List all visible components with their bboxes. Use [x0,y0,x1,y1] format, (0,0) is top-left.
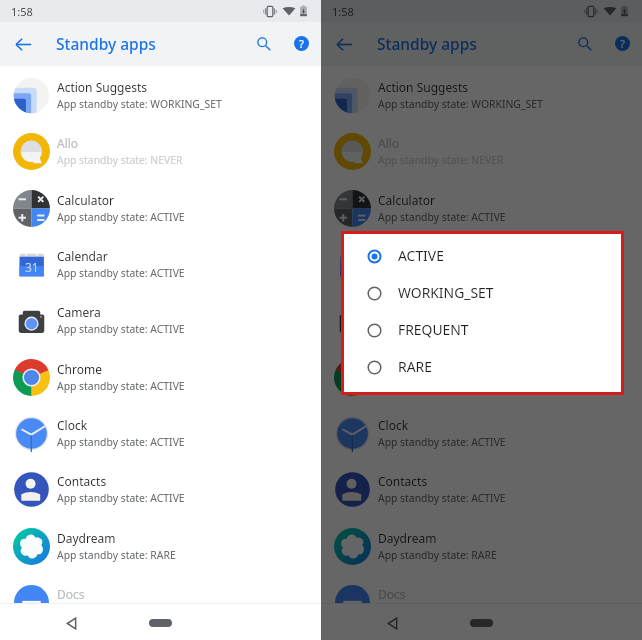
staticText: ? [620,36,625,51]
button[interactable]: Back [59,611,83,635]
button[interactable]: Back [332,32,356,56]
button[interactable]: Allo [0,123,321,179]
staticText: App standby state: RARE [378,548,497,562]
staticText: ACTIVE [398,246,444,265]
staticText: Clock [378,417,409,433]
button[interactable]: Action Suggests [0,67,321,123]
button[interactable]: WORKING_SET [344,275,621,312]
staticText: Action Suggests [378,79,469,95]
button[interactable]: Search [573,32,597,56]
staticText: Docs [57,586,85,602]
button[interactable]: Chrome [0,349,321,405]
staticText: Standby apps [56,33,156,54]
button[interactable]: Daydream [0,518,321,574]
staticText: Allo [378,135,400,151]
button[interactable]: Action Suggests [321,67,642,123]
button[interactable]: Daydream [321,518,642,574]
button[interactable]: Docs [0,574,321,603]
button[interactable]: 31 [0,236,321,292]
staticText: Calculator [57,192,114,208]
staticText: Chrome [378,361,423,377]
button[interactable]: Home [463,613,499,633]
button[interactable]: Help [289,31,313,55]
staticText: App standby state: ACTIVE [57,379,185,393]
button[interactable]: Camera [321,292,642,348]
staticText: 1:58 [332,4,354,19]
staticText: App standby state: WORKING_SET [57,97,222,111]
button[interactable]: Contacts [0,461,321,517]
staticText: App standby state: NEVER [378,153,504,167]
staticText: Calendar [57,248,108,264]
staticText: App standby state: ACTIVE [378,491,506,505]
button[interactable]: Calculator [321,180,642,236]
staticText: App standby state: ACTIVE [57,435,185,449]
staticText: App standby state: ACTIVE [57,266,185,280]
staticText: Docs [378,586,406,602]
button[interactable]: Docs [321,574,642,603]
staticText: Daydream [57,530,116,546]
staticText: Contacts [57,473,107,489]
staticText: App standby state: ACTIVE [57,491,185,505]
staticText: Camera [57,304,101,320]
staticText: Action Suggests [57,79,148,95]
button[interactable]: RARE [344,349,621,386]
staticText: RARE [398,357,432,376]
button[interactable]: Camera [0,292,321,348]
staticText: 1:58 [11,4,33,19]
button[interactable]: ACTIVE [344,238,621,275]
button[interactable]: Home [142,613,178,633]
staticText: Allo [57,135,79,151]
staticText: Standby apps [377,33,477,54]
button[interactable]: Search [252,32,276,56]
button[interactable]: Calculator [0,180,321,236]
staticText: App standby state: ACTIVE [57,210,185,224]
staticText: App standby state: ACTIVE [57,322,185,336]
staticText: App standby state: ACTIVE [378,379,506,393]
staticText: Chrome [57,361,102,377]
button[interactable]: 31 [321,236,642,292]
button[interactable]: Back [380,611,404,635]
staticText: ? [299,36,304,51]
staticText: Calendar [378,248,429,264]
staticText: Contacts [378,473,428,489]
staticText: App standby state: ACTIVE [378,435,506,449]
button[interactable]: Help [610,31,634,55]
button[interactable]: Clock [321,405,642,461]
staticText: Daydream [378,530,437,546]
button[interactable]: Clock [0,405,321,461]
staticText: WORKING_SET [398,283,494,302]
staticText: App standby state: NEVER [57,153,183,167]
staticText: Clock [57,417,88,433]
button[interactable]: Back [11,32,35,56]
button[interactable]: Allo [321,123,642,179]
staticText: App standby state: RARE [57,548,176,562]
staticText: FREQUENT [398,320,469,339]
staticText: App standby state: ACTIVE [378,210,506,224]
button[interactable]: Contacts [321,461,642,517]
staticText: 31 [25,259,39,275]
staticText: App standby state: ACTIVE [378,322,506,336]
button[interactable]: FREQUENT [344,312,621,349]
staticText: Calculator [378,192,435,208]
staticText: App standby state: WORKING_SET [378,97,543,111]
button[interactable]: Chrome [321,349,642,405]
